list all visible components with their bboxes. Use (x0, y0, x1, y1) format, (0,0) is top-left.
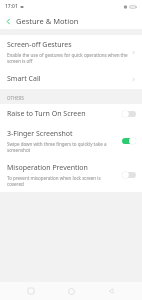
staticText: To prevent misoperation when lock screen… (7, 175, 101, 187)
staticText: Gesture & Motion (16, 16, 79, 26)
staticText: Enable the use of gestures for quick ope… (7, 52, 128, 64)
staticText: Smart Call (7, 74, 41, 84)
button[interactable]: Back (102, 282, 120, 300)
button[interactable]: Back (0, 13, 16, 29)
staticText: Screen-off Gestures (7, 40, 72, 50)
button[interactable]: Misoperation Prevention (0, 158, 142, 192)
button[interactable]: Home (62, 282, 80, 300)
button[interactable]: On (122, 137, 136, 145)
staticText: Swipe down with three fingers to quickly… (7, 141, 107, 153)
staticText: 17:01 (5, 3, 18, 10)
button[interactable]: 3-Finger Screenshot (0, 124, 142, 158)
button[interactable]: Raise to Turn On Screen (0, 104, 142, 124)
button[interactable]: Off (122, 110, 136, 118)
staticText: Misoperation Prevention (7, 163, 88, 173)
staticText: OTHERS (7, 95, 24, 101)
button[interactable]: Screen-off Gestures (0, 35, 142, 69)
button[interactable]: Recent apps (22, 282, 40, 300)
button[interactable]: Smart Call (0, 69, 142, 89)
staticText: Raise to Turn On Screen (7, 109, 86, 119)
button[interactable]: Off (122, 171, 136, 179)
staticText: 3-Finger Screenshot (7, 129, 73, 139)
